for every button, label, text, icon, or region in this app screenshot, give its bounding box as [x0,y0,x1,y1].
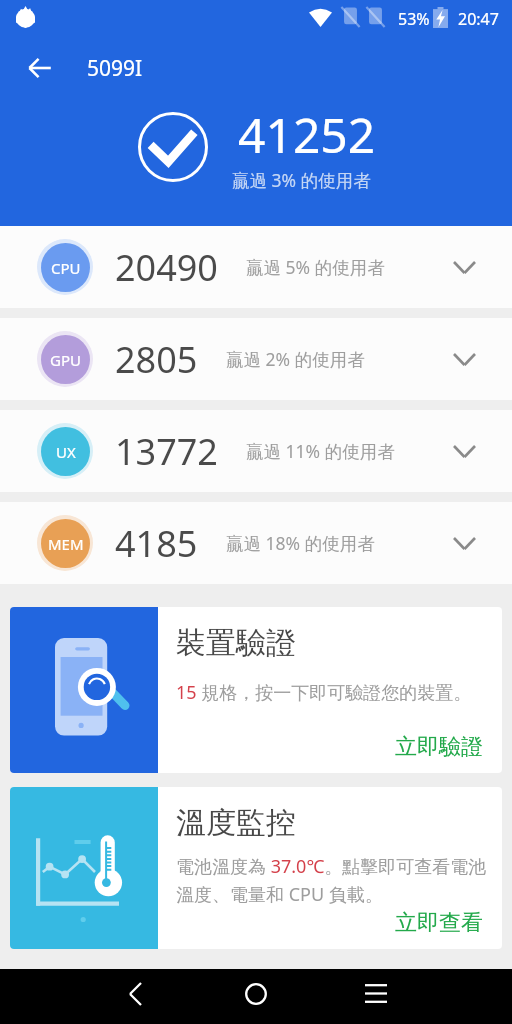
staticText: 裝置驗證 [176,624,296,662]
staticText: 立即驗證 [395,733,483,761]
staticText: 贏過 18% 的使用者 [226,531,375,555]
staticText: 立即查看 [395,909,483,937]
staticText: 20490 [115,243,218,292]
staticText: 贏過 11% 的使用者 [246,439,395,463]
button[interactable]: MEM [0,502,512,584]
staticText: 贏過 5% 的使用者 [246,255,385,279]
button[interactable]: Home [226,966,286,1021]
button[interactable]: CPU [0,226,512,308]
staticText: 溫度監控 [176,804,296,842]
staticText: 13772 [115,427,218,476]
button[interactable]: Back [12,40,68,96]
staticText: 5099I [87,54,143,83]
staticText: CPU [51,258,81,278]
button[interactable]: Back [106,966,165,1021]
staticText: 贏過 2% 的使用者 [226,347,365,371]
staticText: MEM [48,534,84,554]
button[interactable]: UX [0,410,512,492]
button[interactable]: Recent apps [346,966,406,1021]
staticText: 電池溫度為 37.0℃。點擊即可查看電池溫度、電量和 CPU 負載。 [176,854,502,907]
staticText: 15 規格，按一下即可驗證您的裝置。 [176,680,472,705]
staticText: GPU [50,350,81,370]
staticText: 20:47 [458,8,499,30]
staticText: 贏過 3% 的使用者 [232,168,371,192]
button[interactable]: 溫度監控 [10,787,502,949]
staticText: 4185 [115,519,198,568]
button[interactable]: 裝置驗證 [10,607,502,773]
staticText: 41252 [238,102,376,167]
staticText: UX [56,442,76,462]
staticText: 2805 [115,335,198,384]
staticText: 53% [398,8,430,30]
button[interactable]: GPU [0,318,512,400]
